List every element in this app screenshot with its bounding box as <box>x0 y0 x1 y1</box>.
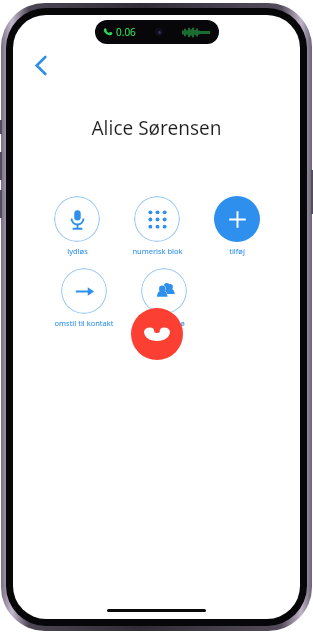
button[interactable]: Tilbage <box>25 49 57 81</box>
staticText: omstil til kontakt <box>54 318 114 328</box>
staticText: tilføj <box>229 246 245 256</box>
button[interactable]: numerisk blok <box>120 196 194 256</box>
button[interactable]: omstil til kø <box>127 268 201 328</box>
button[interactable]: Afslut opkald <box>131 308 183 360</box>
staticText: numerisk blok <box>132 246 183 256</box>
staticText: omstil til kø <box>144 318 185 328</box>
staticText: 0.06 <box>116 25 136 39</box>
button[interactable]: lydløs <box>40 196 114 256</box>
button[interactable]: omstil til kontakt <box>47 268 121 328</box>
button[interactable]: tilføj <box>200 196 274 256</box>
staticText: Alice Sørensen <box>91 115 222 141</box>
staticText: lydløs <box>67 246 88 256</box>
